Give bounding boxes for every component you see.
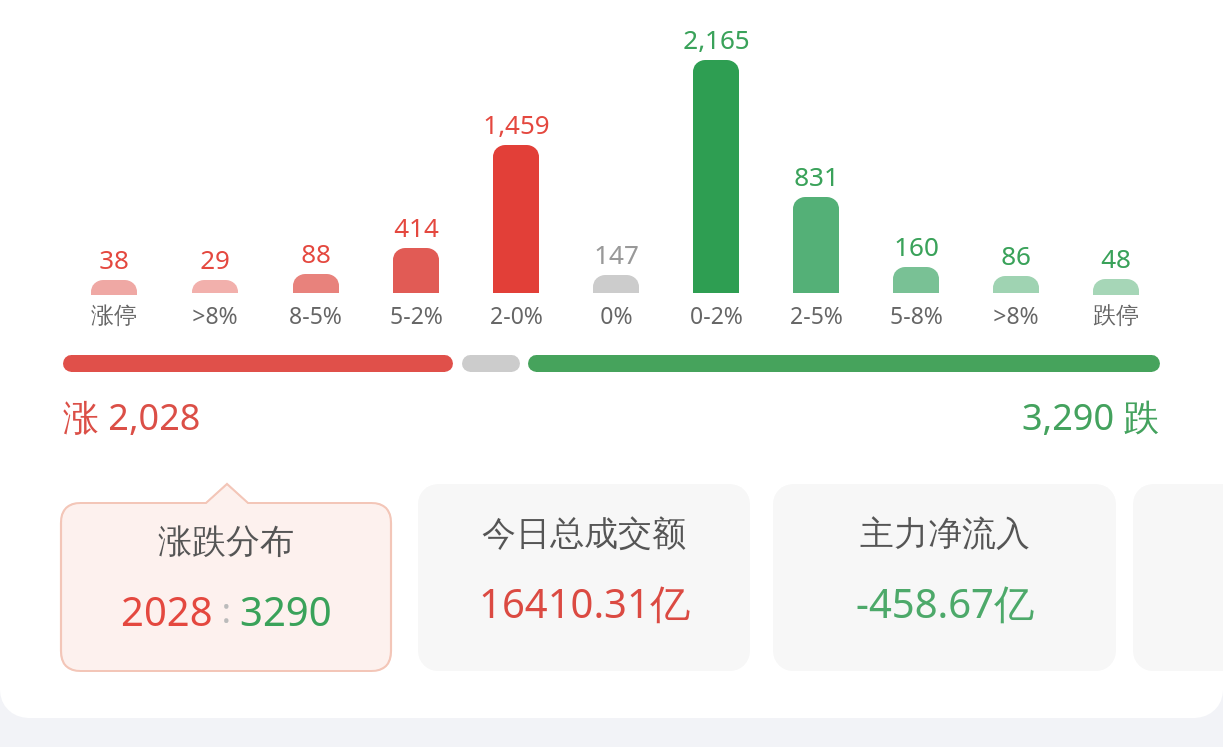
staticText: 涨 2,028 (63, 392, 201, 441)
staticText: 今日总成交额 (482, 512, 686, 555)
staticText: 3,290 跌 (1022, 392, 1160, 441)
button[interactable]: 1,459 (466, 106, 566, 330)
staticText: 2-0% (490, 299, 543, 330)
staticText: 2028 (121, 583, 213, 637)
button[interactable]: 涨跌分布 (61, 484, 391, 671)
staticText: 831 (794, 158, 839, 193)
button[interactable]: 2,165 (666, 21, 766, 330)
button[interactable]: 主力净流入 (773, 484, 1116, 671)
button[interactable] (63, 355, 1160, 372)
staticText: 涨停 (91, 301, 137, 330)
staticText: 5-2% (390, 299, 443, 330)
staticText: 3290 (240, 583, 332, 637)
staticText: -458.67亿 (856, 575, 1034, 630)
staticText: 5-8% (890, 299, 943, 330)
staticText: 88 (301, 235, 331, 270)
button[interactable]: 88 (265, 235, 366, 330)
staticText: 160 (894, 228, 939, 263)
staticText: 38 (99, 241, 129, 276)
button[interactable]: 48 (1066, 240, 1166, 330)
staticText: 涨跌分布 (158, 520, 294, 563)
button[interactable]: 今日总成交额 (418, 484, 750, 671)
button[interactable]: 86 (966, 237, 1066, 330)
staticText: 2,165 (683, 21, 750, 56)
staticText: >8% (993, 299, 1039, 330)
button[interactable]: 29 (164, 241, 265, 330)
staticText: 8-5% (289, 299, 342, 330)
staticText: : (213, 587, 240, 633)
staticText: 29 (200, 241, 230, 276)
staticText: 主力净流入 (860, 512, 1030, 555)
button[interactable]: 414 (366, 209, 466, 330)
staticText: 0% (600, 299, 633, 330)
staticText: 跌停 (1093, 301, 1139, 330)
staticText: 0-2% (690, 299, 743, 330)
staticText: 1,459 (483, 106, 550, 141)
button[interactable]: 147 (566, 236, 666, 330)
button[interactable]: 831 (766, 158, 866, 330)
button[interactable]: 160 (866, 228, 966, 330)
staticText: >8% (192, 299, 238, 330)
staticText: 414 (394, 209, 439, 244)
button[interactable]: 38 (63, 241, 164, 330)
staticText: 2-5% (790, 299, 843, 330)
staticText: 16410.31亿 (479, 575, 690, 630)
staticText: 86 (1001, 237, 1031, 272)
staticText: 48 (1101, 240, 1131, 275)
staticText: 147 (594, 236, 639, 271)
